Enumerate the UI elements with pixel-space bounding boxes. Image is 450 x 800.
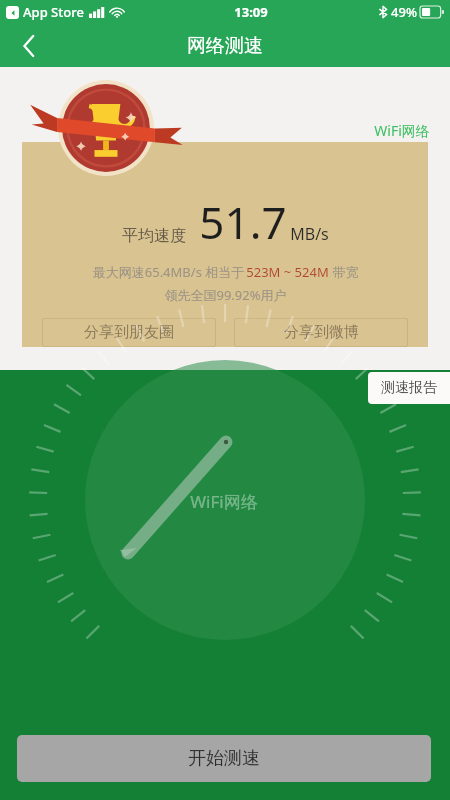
staticText: 领先全国99.92%用户	[164, 286, 287, 304]
button[interactable]: 分享到朋友圈	[42, 318, 216, 347]
staticText: WiFi网络	[190, 490, 258, 513]
button[interactable]: 分享到微博	[234, 318, 408, 347]
staticText: App Store	[23, 3, 84, 21]
staticText: MB/s	[290, 223, 329, 245]
staticText: 测速报告	[381, 379, 437, 397]
staticText: 49%	[391, 3, 417, 21]
staticText: 51.7	[199, 192, 287, 252]
staticText: 平均速度	[122, 226, 186, 246]
staticText: 最大网速65.4MB/s 相当于	[91, 263, 246, 281]
staticText: WiFi网络	[374, 121, 430, 140]
button[interactable]: 开始测速	[17, 735, 431, 782]
staticText: 13:09	[234, 3, 268, 21]
staticText: 网络测速	[187, 34, 263, 58]
staticText: 带宽	[329, 263, 359, 281]
staticText: 开始测速	[188, 747, 260, 770]
staticText: 分享到微博	[284, 323, 359, 342]
staticText: 分享到朋友圈	[84, 323, 174, 342]
staticText: 523M ~ 524M	[246, 263, 329, 281]
button[interactable]: 测速报告	[368, 372, 450, 404]
button[interactable]: Back	[10, 27, 48, 65]
